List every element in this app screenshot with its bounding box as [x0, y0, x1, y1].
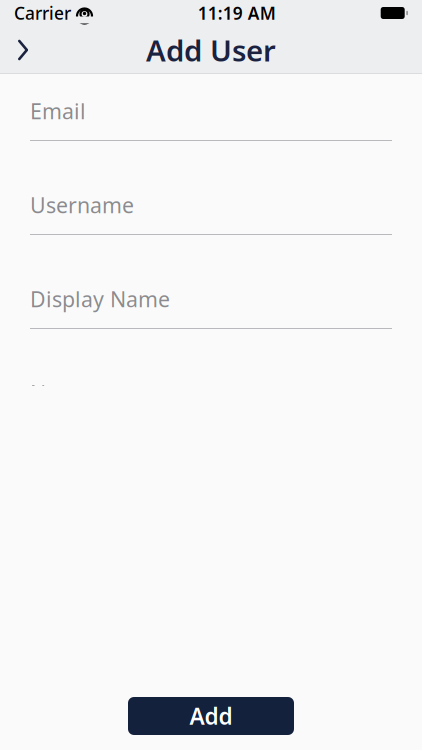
- staticText: Add: [189, 701, 232, 731]
- staticText: Username: [30, 191, 134, 219]
- staticText: Email: [30, 97, 86, 125]
- button[interactable]: Add: [128, 697, 294, 735]
- staticText: Display Name: [30, 285, 170, 313]
- staticText: Notes: [30, 379, 89, 407]
- button[interactable]: Back: [0, 26, 46, 74]
- staticText: 11:19 AM: [198, 1, 276, 24]
- staticText: Carrier: [14, 1, 71, 24]
- staticText: Add User: [146, 30, 276, 69]
